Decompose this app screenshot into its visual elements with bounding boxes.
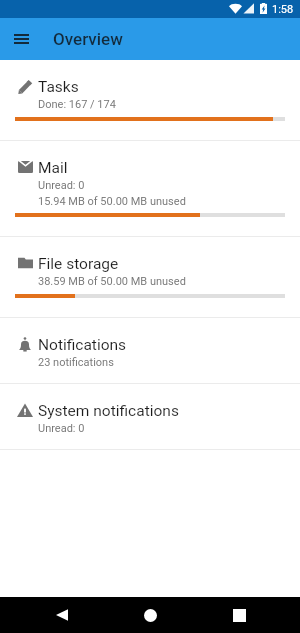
staticText: Notifications (38, 336, 127, 354)
button[interactable]: Open navigation menu (0, 18, 42, 60)
staticText: Tasks (38, 78, 79, 96)
button[interactable]: System notifications (0, 384, 300, 449)
button[interactable]: Recent apps (221, 597, 257, 633)
staticText: Done: 167 / 174 (38, 98, 116, 111)
staticText: System notifications (38, 402, 179, 420)
button[interactable]: Mail (0, 141, 300, 236)
staticText: 23 notifications (38, 356, 114, 369)
button[interactable]: Back (44, 597, 80, 633)
button[interactable]: Home (132, 597, 168, 633)
staticText: Unread: 0 (38, 179, 85, 192)
staticText: Overview (53, 29, 123, 49)
staticText: File storage (38, 255, 119, 273)
staticText: 1:58 (272, 3, 294, 16)
staticText: Mail (38, 159, 68, 177)
button[interactable]: Tasks (0, 60, 300, 140)
button[interactable]: Notifications (0, 318, 300, 383)
staticText: 15.94 MB of 50.00 MB unused (38, 195, 186, 208)
staticText: 38.59 MB of 50.00 MB unused (38, 275, 186, 288)
staticText: Unread: 0 (38, 422, 85, 435)
button[interactable]: File storage (0, 237, 300, 317)
